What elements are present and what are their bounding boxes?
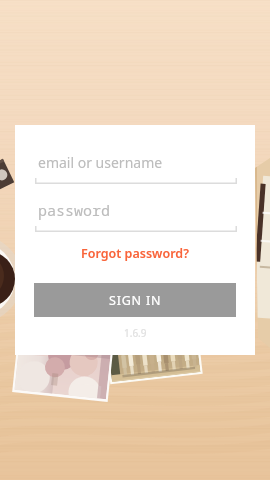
staticText: SIGN IN [109, 292, 162, 309]
staticText: Forgot password? [81, 245, 189, 262]
staticText: password [38, 200, 111, 220]
staticText: 1.6.9 [124, 326, 147, 340]
button[interactable]: email or username [35, 152, 237, 184]
button[interactable]: SIGN IN [34, 283, 236, 317]
staticText: email or username [38, 153, 163, 172]
button[interactable]: password [35, 200, 237, 232]
button[interactable]: Forgot password? [15, 242, 255, 264]
